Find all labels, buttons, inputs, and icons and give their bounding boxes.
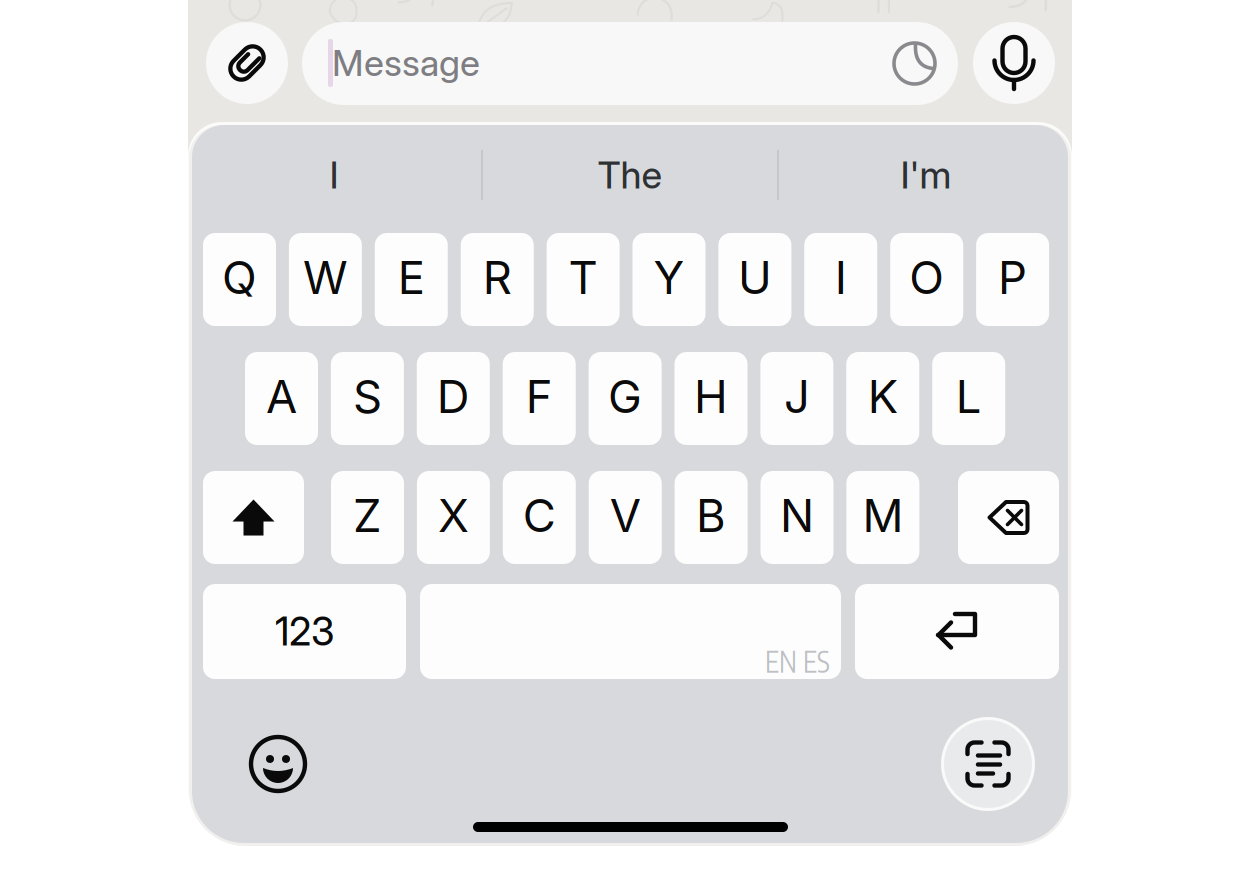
staticText: E (398, 250, 425, 305)
staticText: Y (653, 250, 684, 305)
button[interactable]: I (804, 233, 877, 326)
staticText: Message (332, 41, 480, 85)
staticText: M (862, 488, 903, 543)
staticText: Q (222, 250, 257, 305)
button[interactable]: J (760, 352, 833, 445)
staticText: U (738, 250, 772, 305)
button[interactable]: U (718, 233, 791, 326)
button[interactable]: Delete (958, 471, 1059, 564)
button[interactable]: D (417, 352, 490, 445)
button[interactable]: 123 (203, 584, 406, 679)
button[interactable]: G (589, 352, 662, 445)
button[interactable]: T (547, 233, 620, 326)
button[interactable]: Shift (203, 471, 304, 564)
button[interactable]: Record voice message (973, 22, 1055, 104)
staticText: C (523, 488, 556, 543)
button[interactable]: C (503, 471, 576, 564)
button[interactable]: W (289, 233, 362, 326)
staticText: A (266, 369, 297, 424)
button[interactable]: L (932, 352, 1005, 445)
button[interactable]: I'm (780, 147, 1072, 203)
staticText: The (597, 152, 662, 198)
staticText: T (569, 250, 598, 305)
staticText: R (483, 250, 512, 305)
staticText: EN ES (765, 644, 830, 679)
button[interactable]: Attach (206, 22, 288, 104)
staticText: H (694, 369, 728, 424)
staticText: P (998, 250, 1027, 305)
button[interactable]: E (375, 233, 448, 326)
staticText: G (608, 369, 642, 424)
button[interactable]: Scan text (941, 717, 1035, 811)
staticText: B (696, 488, 726, 543)
staticText: W (303, 250, 348, 305)
staticText: O (909, 250, 944, 305)
button[interactable]: I (188, 147, 480, 203)
button[interactable]: N (760, 471, 833, 564)
staticText: Z (353, 488, 382, 543)
staticText: K (868, 369, 898, 424)
button[interactable]: Message (302, 22, 958, 105)
staticText: X (438, 488, 469, 543)
staticText: V (610, 488, 641, 543)
button[interactable]: R (461, 233, 534, 326)
button[interactable]: S (331, 352, 404, 445)
staticText: D (437, 369, 470, 424)
button[interactable]: V (589, 471, 662, 564)
button[interactable]: B (675, 471, 748, 564)
button[interactable]: X (417, 471, 490, 564)
button[interactable]: space (420, 584, 841, 679)
button[interactable]: Q (203, 233, 276, 326)
button[interactable]: Emoji keyboard (243, 729, 313, 799)
button[interactable]: O (890, 233, 963, 326)
staticText: 123 (275, 608, 334, 655)
button[interactable]: The (483, 147, 777, 203)
button[interactable]: P (976, 233, 1049, 326)
staticText: I (329, 152, 338, 198)
staticText: J (784, 369, 810, 424)
staticText: F (526, 369, 553, 424)
button[interactable]: M (846, 471, 919, 564)
button[interactable]: Z (331, 471, 404, 564)
button[interactable]: A (245, 352, 318, 445)
button[interactable]: K (846, 352, 919, 445)
staticText: N (780, 488, 814, 543)
staticText: I'm (900, 152, 951, 198)
button[interactable]: Y (632, 233, 705, 326)
button[interactable]: Return (855, 584, 1059, 679)
button[interactable]: F (503, 352, 576, 445)
button[interactable]: H (674, 352, 747, 445)
staticText: L (956, 369, 982, 424)
staticText: S (353, 369, 382, 424)
staticText: I (835, 250, 847, 305)
